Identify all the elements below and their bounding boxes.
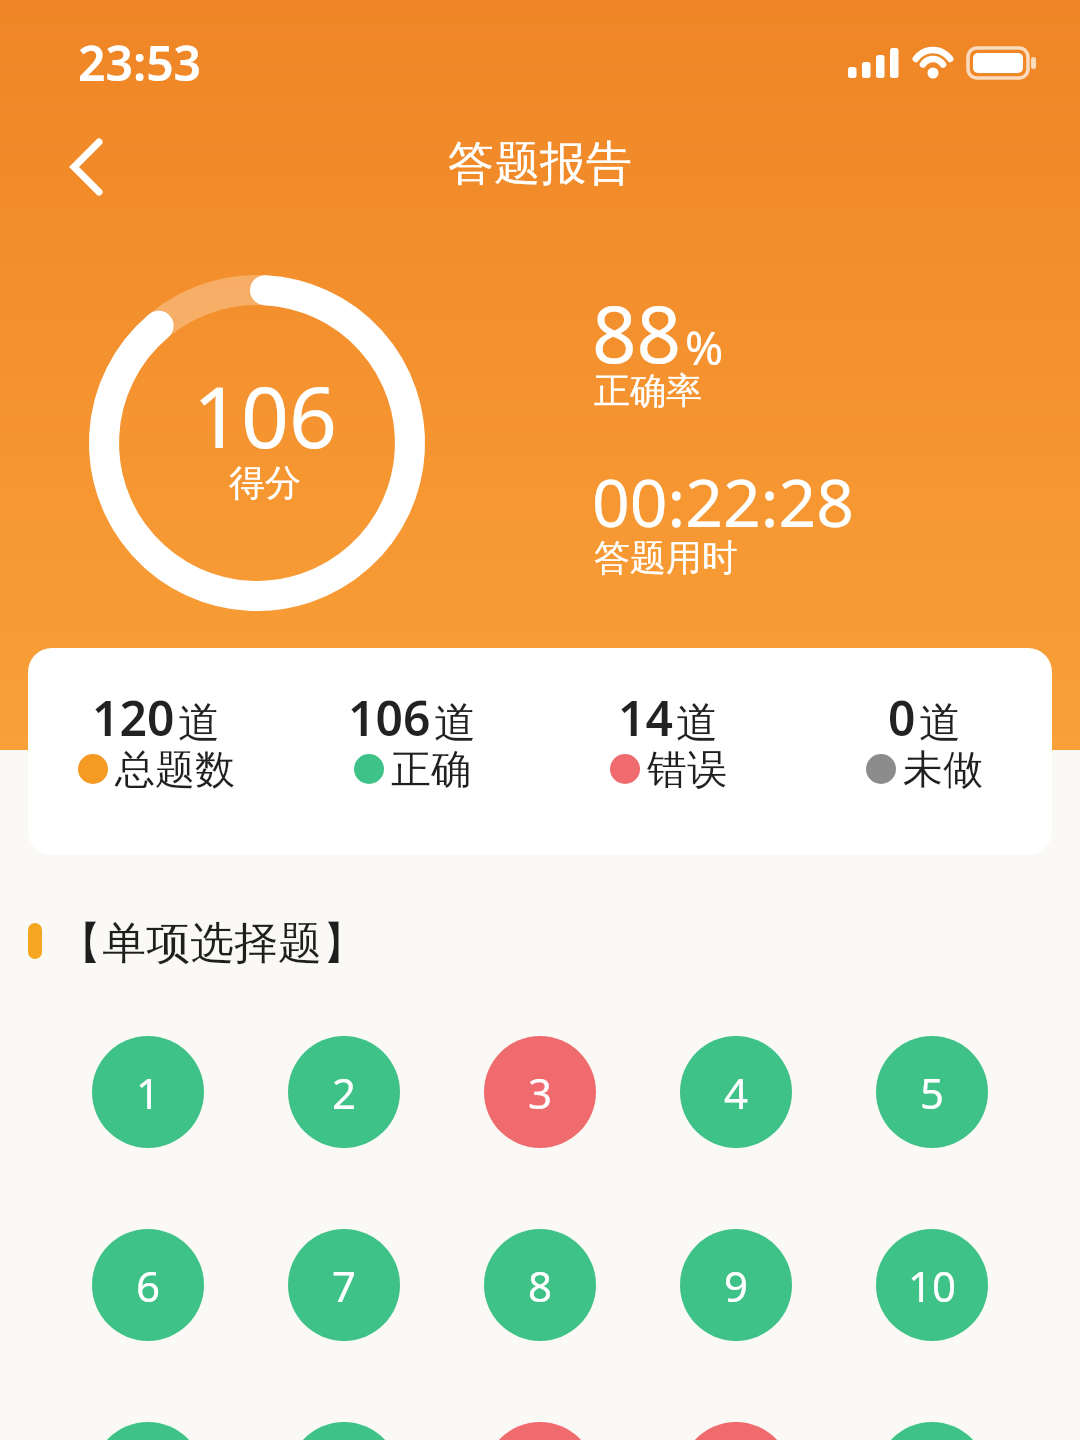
staticText: 14 (618, 685, 673, 750)
button[interactable]: 12 (288, 1422, 400, 1440)
staticText: % (685, 316, 724, 379)
button[interactable]: 2 (288, 1036, 400, 1148)
button[interactable]: 1 (92, 1036, 204, 1148)
staticText: 2 (332, 1064, 357, 1121)
button[interactable]: 10 (876, 1229, 988, 1341)
button[interactable]: 4 (680, 1036, 792, 1148)
staticText: 106 (193, 358, 338, 472)
staticText: 正确 (391, 744, 471, 794)
staticText: 答题报告 (448, 135, 632, 193)
button[interactable]: 9 (680, 1229, 792, 1341)
staticText: 得分 (229, 460, 301, 505)
staticText: 106 (348, 685, 431, 750)
staticText: 4 (724, 1064, 749, 1121)
staticText: 错误 (647, 744, 727, 794)
staticText: 5 (920, 1064, 945, 1121)
staticText: 00:22:28 (592, 456, 854, 546)
staticText: 1 (136, 1064, 161, 1121)
staticText: 23:53 (78, 30, 202, 95)
staticText: 【单项选择题】 (58, 916, 366, 966)
button[interactable]: 14 (680, 1422, 792, 1440)
staticText: 9 (724, 1257, 749, 1314)
staticText: 7 (332, 1257, 357, 1314)
staticText: 3 (528, 1064, 553, 1121)
button[interactable] (52, 126, 124, 198)
staticText: 88 (592, 280, 682, 386)
button[interactable]: 13 (484, 1422, 596, 1440)
button[interactable]: 11 (92, 1422, 204, 1440)
staticText: 10 (908, 1257, 957, 1314)
staticText: 道 (676, 697, 718, 750)
staticText: 正确率 (594, 368, 702, 413)
staticText: 120 (92, 685, 175, 750)
staticText: 答题用时 (594, 535, 738, 580)
button[interactable]: 6 (92, 1229, 204, 1341)
staticText: 8 (528, 1257, 553, 1314)
button[interactable]: 15 (876, 1422, 988, 1440)
button[interactable]: 7 (288, 1229, 400, 1341)
staticText: 总题数 (115, 744, 235, 794)
button[interactable]: 8 (484, 1229, 596, 1341)
button[interactable]: 5 (876, 1036, 988, 1148)
staticText: 道 (178, 697, 220, 750)
staticText: 道 (434, 697, 476, 750)
staticText: 0 (888, 685, 916, 750)
staticText: 道 (919, 697, 961, 750)
staticText: 未做 (903, 744, 983, 794)
button[interactable]: 3 (484, 1036, 596, 1148)
staticText: 6 (136, 1257, 161, 1314)
